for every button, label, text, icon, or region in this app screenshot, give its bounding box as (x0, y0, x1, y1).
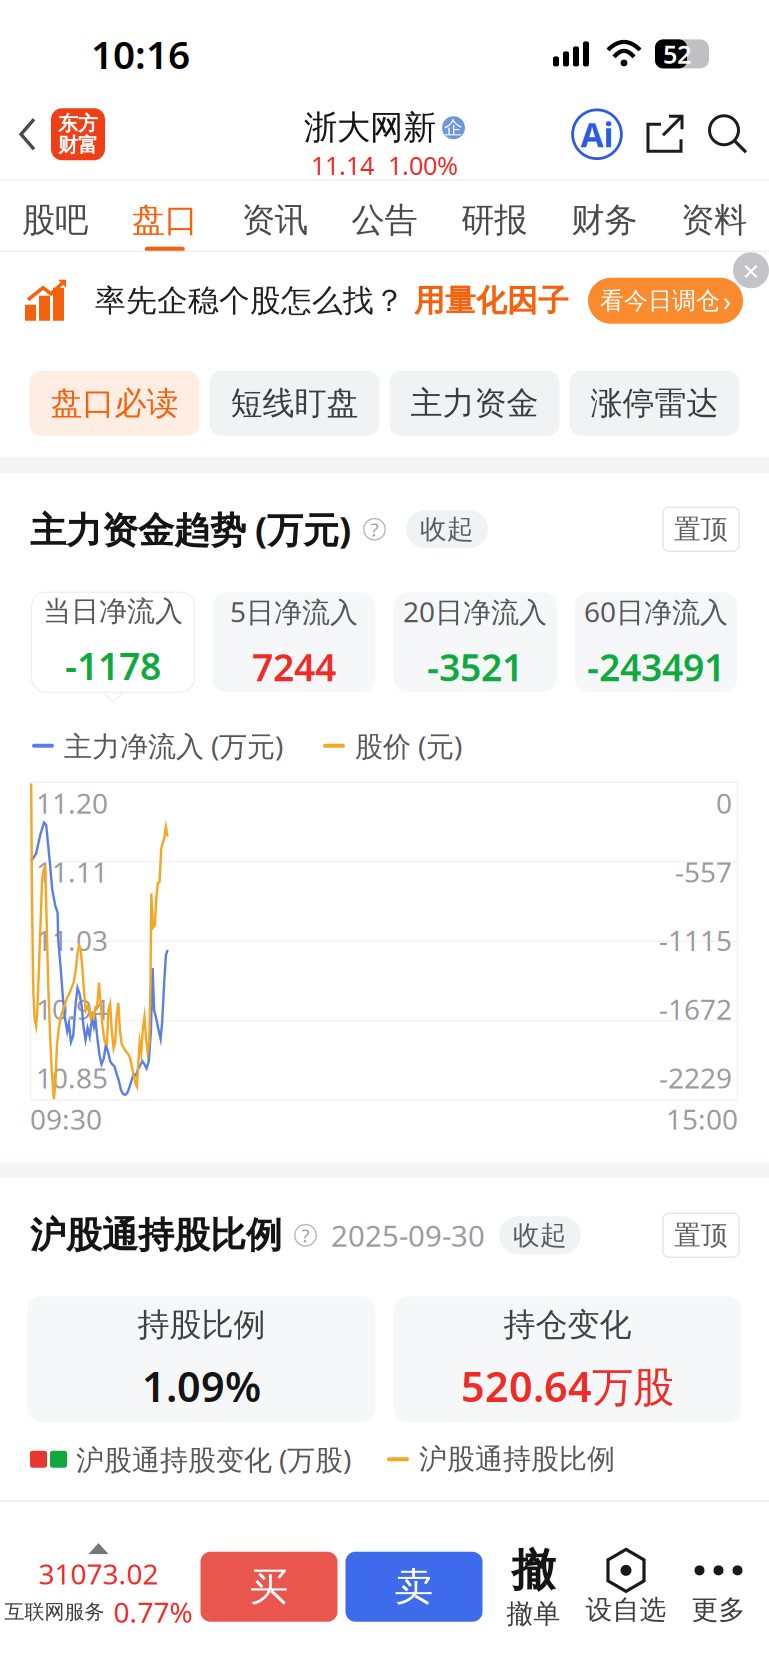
staticText: 11.11 (36, 853, 108, 890)
staticText: 主力资金 (410, 384, 538, 423)
button[interactable]: 短线盯盘 (209, 371, 379, 436)
staticText: 股吧 (22, 200, 88, 241)
button[interactable]: 公告 (330, 181, 439, 251)
staticText: ? (301, 1223, 309, 1248)
staticText: 持仓变化 (503, 1305, 631, 1344)
button[interactable]: 撤 (488, 1538, 578, 1636)
button[interactable]: 卖 (345, 1552, 482, 1622)
button[interactable]: 研报 (439, 181, 549, 251)
button[interactable]: Back (0, 108, 105, 160)
button[interactable]: Search (707, 113, 749, 155)
staticText: 盘口 (132, 200, 198, 241)
staticText: -2229 (659, 1059, 732, 1096)
staticText: 2025-09-30 (331, 1216, 485, 1255)
staticText: × (742, 251, 759, 290)
button[interactable]: 股吧 (0, 181, 110, 251)
staticText: 东方 (58, 111, 98, 136)
staticText: -1115 (659, 922, 732, 959)
staticText: 7244 (252, 642, 336, 692)
staticText: 1.09% (142, 1358, 261, 1413)
button[interactable]: 5日净流入 (212, 592, 375, 702)
staticText: 收起 (513, 1219, 567, 1252)
button[interactable]: 盘口必读 (29, 371, 199, 436)
button[interactable]: 20日净流入 (393, 592, 556, 702)
button[interactable]: 资讯 (220, 181, 330, 251)
button[interactable]: 当日净流入 (31, 592, 194, 702)
button[interactable]: 财务 (549, 181, 659, 251)
staticText: 撤单 (506, 1597, 560, 1630)
staticText: 短线盯盘 (230, 384, 358, 423)
staticText: Ai (580, 112, 613, 156)
button[interactable]: 资料 (659, 181, 769, 251)
staticText: 用量化因子 (414, 282, 569, 320)
staticText: 沪股通持股比例 (30, 1213, 282, 1257)
staticText: -1672 (659, 990, 732, 1028)
staticText: 当日净流入 (43, 594, 183, 629)
staticText: 买 (249, 1563, 288, 1610)
button[interactable]: 涨停雷达 (569, 371, 739, 436)
staticText: 股价 (元) (355, 727, 462, 764)
staticText: -243491 (587, 642, 725, 692)
button[interactable]: 60日净流入 (574, 592, 737, 702)
staticText: › (723, 283, 731, 318)
staticText: 持股比例 (137, 1305, 265, 1344)
staticText: 31073.02 (38, 1555, 158, 1592)
staticText: 财富 (58, 133, 98, 157)
staticText: 10.85 (36, 1059, 108, 1096)
button[interactable]: Share (645, 113, 685, 155)
staticText: 资讯 (242, 200, 308, 241)
staticText: -3521 (427, 642, 523, 692)
staticText: 10:16 (91, 28, 190, 79)
staticText: 沪股通持股变化 (万股) (76, 1441, 351, 1478)
button[interactable]: 更多 (673, 1538, 763, 1636)
staticText: 09:30 (30, 1100, 102, 1137)
button[interactable]: Close banner (733, 252, 769, 288)
staticText: 资料 (681, 200, 747, 241)
staticText: 企 (444, 116, 463, 139)
staticText: 主力资金趋势 (万元) (30, 505, 351, 553)
button[interactable]: 盘口 (110, 181, 220, 251)
staticText: 0 (716, 784, 732, 821)
staticText: 互联网服务 (4, 1600, 104, 1624)
staticText: 60日净流入 (584, 593, 728, 630)
button[interactable]: 收起 (406, 510, 488, 548)
staticText: 5日净流入 (230, 593, 358, 630)
button[interactable]: 看今日调仓 (588, 278, 743, 324)
staticText: 11.14 (311, 148, 374, 182)
staticText: 沪股通持股比例 (419, 1442, 615, 1476)
staticText: 10.94 (36, 990, 108, 1028)
button[interactable]: AI assistant (571, 108, 623, 160)
staticText: 主力净流入 (万元) (64, 727, 283, 764)
staticText: 置顶 (674, 1219, 728, 1252)
button[interactable]: 设自选 (578, 1538, 673, 1636)
staticText: 设自选 (585, 1593, 666, 1626)
staticText: 0.77% (113, 1593, 192, 1630)
staticText: 11.20 (36, 784, 108, 821)
staticText: 11.03 (36, 922, 108, 959)
button[interactable]: 置顶 (663, 1213, 739, 1257)
staticText: 卖 (394, 1563, 433, 1610)
staticText: 撤 (511, 1543, 555, 1597)
staticText: 盘口必读 (50, 384, 178, 423)
staticText: 收起 (420, 513, 474, 546)
button[interactable]: 主力资金 (389, 371, 559, 436)
button[interactable]: 买 (200, 1552, 337, 1622)
staticText: 涨停雷达 (590, 384, 718, 423)
staticText: 52 (663, 37, 691, 71)
button[interactable]: 置顶 (663, 507, 739, 551)
staticText: 置顶 (674, 513, 728, 546)
staticText: ? (370, 517, 378, 542)
staticText: 财务 (571, 200, 637, 241)
staticText: 率先企稳个股怎么找？ (95, 282, 405, 320)
button[interactable]: 收起 (499, 1216, 581, 1254)
staticText: 15:00 (666, 1100, 738, 1137)
staticText: 研报 (461, 200, 527, 241)
staticText: 1.00% (388, 148, 458, 182)
staticText: 公告 (351, 200, 417, 241)
staticText: 看今日调仓 (600, 286, 720, 315)
staticText: -1178 (65, 641, 161, 690)
staticText: 520.64万股 (461, 1358, 674, 1413)
staticText: 20日净流入 (403, 593, 547, 630)
staticText: 更多 (691, 1593, 745, 1626)
staticText: -557 (675, 853, 732, 890)
